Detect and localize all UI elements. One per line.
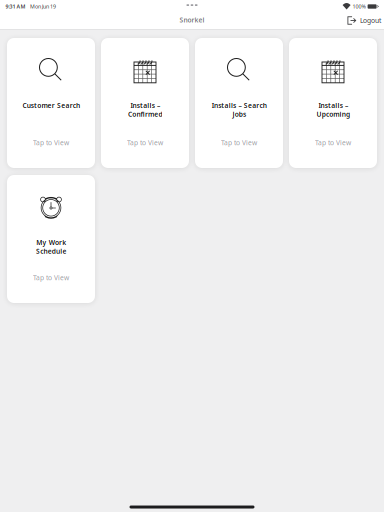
staticText: Tap to View [127, 138, 163, 147]
staticText: 100% [353, 3, 366, 10]
staticText: Logout [360, 16, 381, 25]
staticText: Snorkel [179, 16, 204, 24]
button[interactable]: Installs – Confirmed [101, 38, 189, 168]
staticText: Installs – Upcoming [316, 101, 350, 119]
staticText: Tap to View [315, 138, 351, 147]
button[interactable]: My Work Schedule [7, 175, 95, 303]
staticText: Tap to View [33, 273, 69, 282]
staticText: Customer Search [22, 101, 80, 110]
button[interactable]: Logout [343, 13, 384, 28]
staticText: Installs – Confirmed [128, 101, 162, 119]
staticText: Tap to View [221, 138, 257, 147]
staticText: 9:31 AM [5, 3, 25, 10]
staticText: Tap to View [33, 138, 69, 147]
staticText: Installs – Search Jobs [212, 101, 266, 119]
button[interactable]: Installs – Upcoming [289, 38, 377, 168]
staticText: Mon Jun 19 [30, 3, 56, 10]
staticText: My Work Schedule [36, 238, 66, 256]
button[interactable]: Installs – Search Jobs [195, 38, 283, 168]
button[interactable]: Customer Search [7, 38, 95, 168]
